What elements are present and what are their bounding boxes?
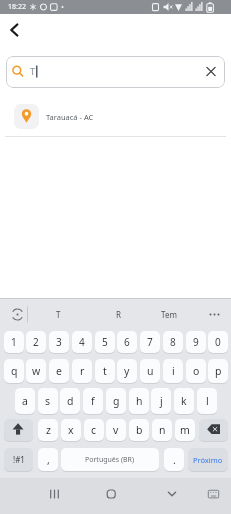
staticText: Próximo [193, 455, 223, 465]
button[interactable]: 0 [208, 331, 228, 353]
staticText: 4 [79, 335, 85, 349]
button[interactable]: z [38, 419, 58, 441]
button[interactable] [4, 301, 31, 328]
button[interactable]: w [26, 359, 46, 383]
button[interactable] [40, 482, 68, 508]
staticText: !#1 [13, 454, 25, 465]
staticText: l [206, 394, 209, 408]
staticText: a [22, 394, 28, 408]
button[interactable]: b [129, 419, 149, 441]
staticText: r [80, 364, 85, 378]
button[interactable]: 6 [117, 331, 137, 353]
button[interactable]: 3 [49, 331, 69, 353]
button[interactable]: u [140, 359, 160, 383]
button[interactable]: 1 [4, 331, 24, 353]
staticText: j [160, 394, 163, 408]
staticText: u [147, 364, 154, 378]
staticText: f [91, 394, 95, 408]
button[interactable]: l [197, 388, 217, 414]
staticText: y [124, 364, 130, 378]
staticText: t [103, 364, 107, 378]
button[interactable]: x [61, 419, 81, 441]
staticText: z [46, 423, 51, 437]
button[interactable]: t [95, 359, 115, 383]
button[interactable]: c [84, 419, 104, 441]
staticText: h [136, 394, 143, 408]
staticText: 5 [102, 335, 108, 349]
staticText: 8 [170, 335, 176, 349]
button[interactable]: Português (BR) [61, 448, 159, 471]
button[interactable]: d [60, 388, 80, 414]
button[interactable]: e [49, 359, 69, 383]
staticText: 7 [147, 335, 153, 349]
staticText: x [68, 423, 74, 437]
staticText: w [32, 364, 41, 378]
button[interactable]: o [186, 359, 206, 383]
staticText: b [136, 423, 143, 437]
button[interactable] [158, 482, 186, 508]
staticText: p [215, 364, 222, 378]
staticText: 1 [11, 335, 17, 349]
button[interactable]: i [163, 359, 183, 383]
button[interactable]: y [117, 359, 137, 383]
button[interactable]: n [152, 419, 172, 441]
staticText: i [172, 364, 175, 378]
staticText: R [116, 309, 121, 320]
staticText: o [193, 364, 200, 378]
button[interactable] [6, 99, 225, 133]
button[interactable]: s [38, 388, 58, 414]
button[interactable]: 5 [95, 331, 115, 353]
staticText: s [45, 394, 51, 408]
button[interactable]: k [174, 388, 194, 414]
staticText: T [30, 65, 36, 78]
button[interactable]: h [129, 388, 149, 414]
staticText: 9 [193, 335, 199, 349]
button[interactable]: 8 [163, 331, 183, 353]
staticText: d [67, 394, 74, 408]
staticText: Tarauacá - AC [46, 112, 94, 122]
button[interactable]: q [4, 359, 24, 383]
button[interactable]: !#1 [4, 448, 33, 471]
button[interactable]: g [106, 388, 126, 414]
button[interactable]: f [83, 388, 103, 414]
button[interactable]: Próximo [188, 448, 228, 471]
staticText: 0 [215, 335, 221, 349]
button[interactable]: 4 [72, 331, 92, 353]
staticText: v [113, 423, 119, 437]
staticText: , [47, 453, 50, 467]
staticText: 3 [56, 335, 62, 349]
button[interactable] [97, 482, 125, 508]
button[interactable]: r [72, 359, 92, 383]
staticText: c [91, 423, 97, 437]
staticText: m [180, 423, 190, 437]
staticText: Tem [161, 309, 177, 320]
button[interactable] [202, 301, 228, 328]
button[interactable] [6, 56, 225, 88]
staticText: 2 [33, 335, 39, 349]
staticText: 6 [124, 335, 130, 349]
button[interactable]: 7 [140, 331, 160, 353]
staticText: 18:22 [8, 2, 26, 12]
button[interactable] [199, 419, 228, 441]
staticText: e [56, 364, 62, 378]
staticText: g [113, 394, 120, 408]
staticText: k [181, 394, 187, 408]
button[interactable]: 9 [186, 331, 206, 353]
button[interactable]: j [151, 388, 171, 414]
button[interactable] [200, 482, 226, 508]
staticText: T [56, 309, 61, 320]
button[interactable] [4, 419, 33, 441]
button[interactable]: p [208, 359, 228, 383]
button[interactable]: 2 [26, 331, 46, 353]
button[interactable]: m [175, 419, 195, 441]
staticText: . [173, 453, 176, 467]
button[interactable]: a [15, 388, 35, 414]
button[interactable]: v [106, 419, 126, 441]
staticText: q [11, 364, 18, 378]
staticText: n [159, 423, 166, 437]
button[interactable]: , [38, 448, 58, 471]
button[interactable]: . [164, 448, 184, 471]
staticText: Português (BR) [85, 455, 135, 465]
